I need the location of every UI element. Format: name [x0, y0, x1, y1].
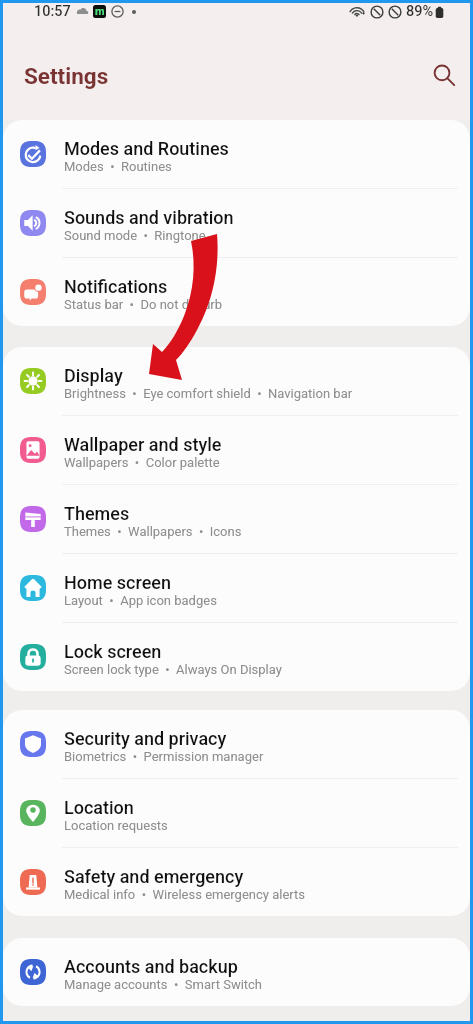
staticText: Security and privacy — [64, 728, 227, 749]
staticText: Wallpaper and style — [64, 434, 222, 455]
button[interactable]: Security and privacy — [3, 710, 470, 778]
staticText: Status bar • Do not disturb — [64, 297, 223, 312]
button[interactable]: Sounds and vibration — [3, 189, 470, 257]
staticText: Themes — [64, 503, 130, 524]
staticText: Safety and emergency — [64, 866, 244, 887]
staticText: Screen lock type • Always On Display — [64, 662, 282, 677]
staticText: Display — [64, 365, 123, 386]
staticText: Brightness • Eye comfort shield • Naviga… — [64, 386, 353, 401]
button[interactable]: Wallpaper and style — [3, 416, 470, 484]
staticText: Modes • Routines — [64, 159, 172, 174]
button[interactable]: Safety and emergency — [3, 848, 470, 916]
button[interactable]: Display — [3, 347, 470, 415]
staticText: Layout • App icon badges — [64, 593, 217, 608]
button[interactable]: Themes — [3, 485, 470, 553]
staticText: 89% — [406, 3, 434, 20]
button[interactable]: Accounts and backup — [3, 938, 470, 1006]
staticText: Home screen — [64, 572, 171, 593]
staticText: Sounds and vibration — [64, 207, 234, 228]
staticText: Lock screen — [64, 641, 162, 662]
staticText: Biometrics • Permission manager — [64, 749, 264, 764]
staticText: Modes and Routines — [64, 138, 229, 159]
staticText: Manage accounts • Smart Switch — [64, 977, 263, 992]
staticText: Location — [64, 797, 134, 818]
staticText: Settings — [24, 63, 109, 89]
staticText: Medical info • Wireless emergency alerts — [64, 887, 305, 902]
button[interactable]: Modes and Routines — [3, 120, 470, 188]
button[interactable]: Search — [424, 56, 464, 96]
staticText: Wallpapers • Color palette — [64, 455, 220, 470]
button[interactable]: Location — [3, 779, 470, 847]
staticText: Themes • Wallpapers • Icons — [64, 524, 242, 539]
staticText: Accounts and backup — [64, 956, 238, 977]
staticText: 10:57 — [34, 3, 71, 20]
button[interactable]: Notifications — [3, 258, 470, 326]
staticText: m — [95, 5, 105, 18]
button[interactable]: Lock screen — [3, 623, 470, 691]
button[interactable]: Home screen — [3, 554, 470, 622]
staticText: Sound mode • Ringtone — [64, 228, 206, 243]
staticText: Location requests — [64, 818, 168, 833]
staticText: Notifications — [64, 276, 168, 297]
